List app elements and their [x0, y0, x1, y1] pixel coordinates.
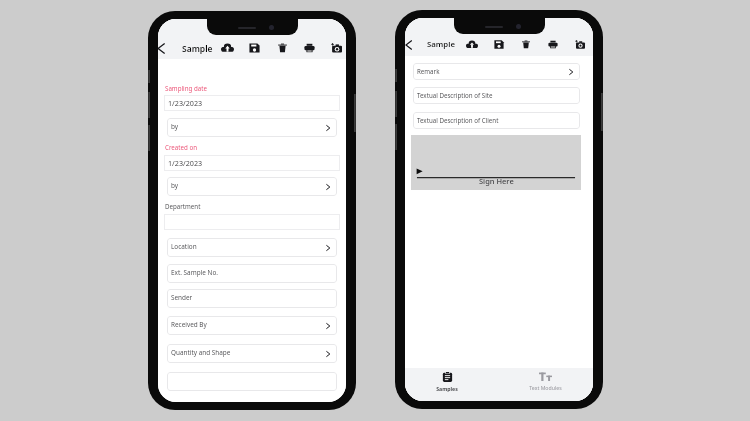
button[interactable] — [164, 214, 340, 230]
button[interactable]: Received By — [167, 316, 337, 335]
button[interactable]: Take photo — [329, 41, 343, 55]
button[interactable]: Text Modules — [521, 368, 569, 401]
button[interactable]: Sample — [427, 37, 455, 52]
button[interactable]: Upload to cloud — [220, 41, 234, 55]
button[interactable]: Print — [546, 37, 560, 51]
button[interactable]: 1/23/2023 — [164, 95, 340, 111]
button[interactable]: Delete — [519, 37, 533, 51]
button[interactable]: Back — [405, 37, 416, 52]
staticText: Samples — [436, 385, 458, 392]
staticText: Sampling date — [165, 84, 207, 92]
staticText: Quantity and Shape — [171, 348, 231, 357]
button[interactable]: Quantity and Shape — [167, 344, 337, 363]
staticText: by — [171, 181, 179, 190]
staticText: Sample — [182, 43, 213, 55]
staticText: Textual Description of Site — [417, 91, 493, 99]
staticText: Sample — [427, 39, 455, 50]
button[interactable]: Back — [158, 41, 169, 56]
staticText: Remark — [417, 67, 440, 75]
button[interactable]: Samples — [423, 368, 471, 401]
staticText: Text Modules — [529, 384, 562, 391]
button[interactable]: Take photo — [573, 37, 587, 51]
button[interactable]: Textual Description of Client — [413, 112, 580, 129]
staticText: Ext. Sample No. — [171, 268, 218, 277]
button[interactable]: Sample — [182, 41, 213, 56]
staticText: Department — [165, 202, 201, 210]
button[interactable] — [167, 372, 337, 391]
button[interactable]: Location — [167, 238, 337, 257]
button[interactable]: Save — [247, 41, 261, 55]
staticText: Sign Here — [479, 176, 514, 186]
button[interactable]: Ext. Sample No. — [167, 264, 337, 283]
button[interactable]: Print — [302, 41, 316, 55]
staticText: Textual Description of Client — [417, 116, 499, 124]
staticText: Sender — [171, 293, 193, 302]
button[interactable]: Remark — [413, 63, 580, 80]
button[interactable]: by — [167, 177, 337, 196]
staticText: 1/23/2023 — [168, 158, 203, 168]
staticText: 1/23/2023 — [168, 98, 203, 108]
staticText: Received By — [171, 320, 207, 329]
button[interactable]: Delete — [275, 41, 289, 55]
staticText: by — [171, 122, 179, 131]
button[interactable]: 1/23/2023 — [164, 155, 340, 171]
staticText: Location — [171, 242, 197, 251]
button[interactable]: by — [167, 118, 337, 137]
button[interactable]: Textual Description of Site — [413, 87, 580, 104]
button[interactable]: Upload to cloud — [465, 37, 479, 51]
button[interactable]: Sender — [167, 289, 337, 308]
button[interactable]: Save — [492, 37, 506, 51]
staticText: Created on — [165, 143, 198, 151]
